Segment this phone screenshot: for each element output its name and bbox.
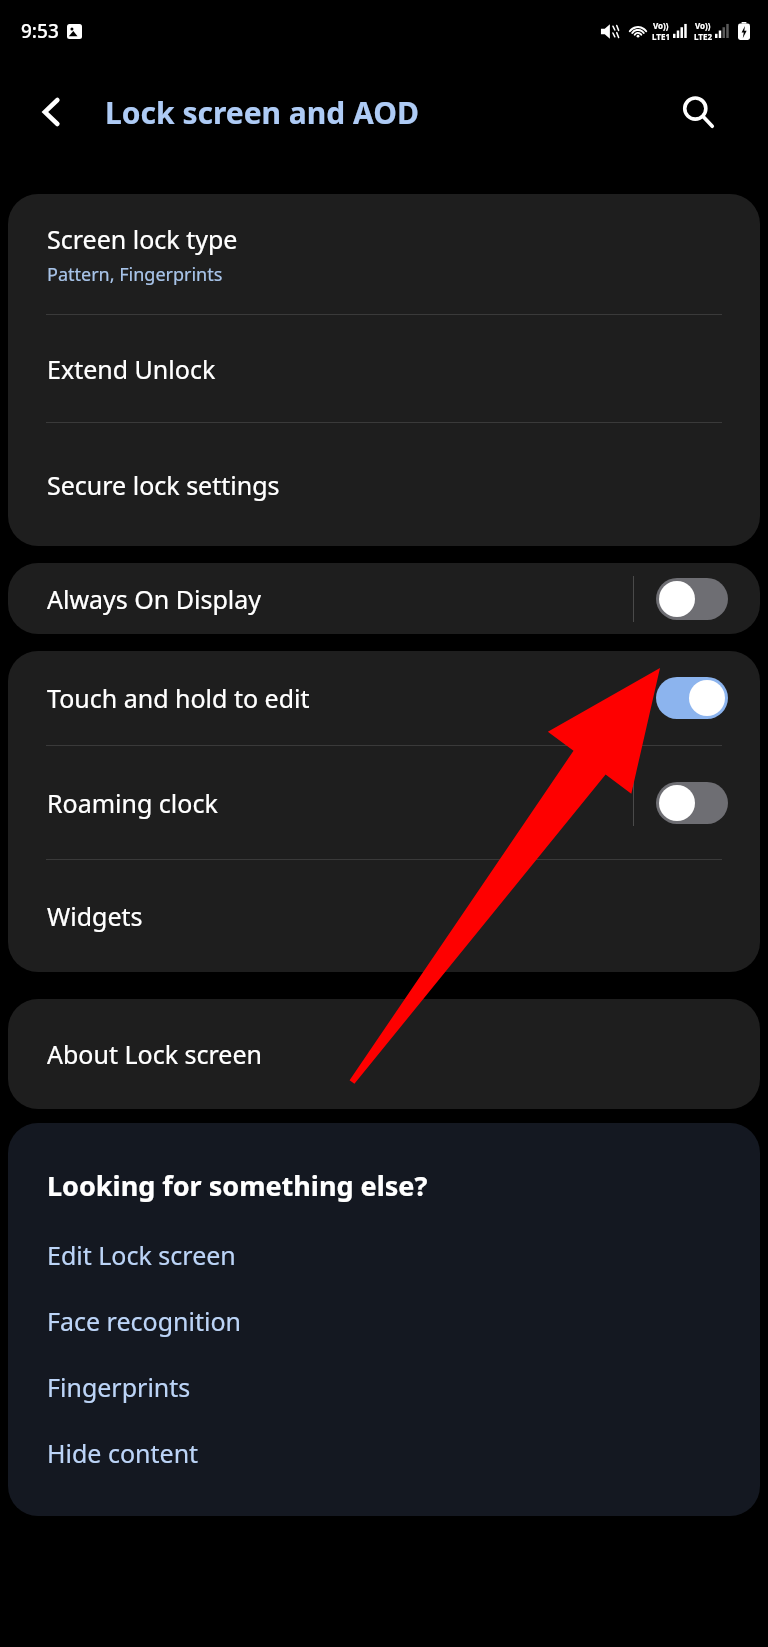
staticText: Screen lock type bbox=[47, 222, 238, 256]
staticText: Vo)) bbox=[695, 20, 711, 31]
staticText: Face recognition bbox=[47, 1304, 241, 1338]
staticText: About Lock screen bbox=[47, 1037, 262, 1071]
button[interactable]: Secure lock settings bbox=[8, 423, 760, 546]
staticText: Always On Display bbox=[47, 582, 633, 616]
button[interactable]: Extend Unlock bbox=[8, 315, 760, 422]
button[interactable]: Fingerprints bbox=[8, 1354, 760, 1420]
button[interactable]: Always On Display bbox=[8, 563, 760, 634]
button[interactable]: Widgets bbox=[8, 860, 760, 972]
staticText: Looking for something else? bbox=[47, 1167, 428, 1204]
button[interactable]: Hide content bbox=[8, 1420, 760, 1486]
staticText: Pattern, Fingerprints bbox=[47, 262, 223, 287]
staticText: Hide content bbox=[47, 1436, 199, 1470]
staticText: Touch and hold to edit bbox=[47, 681, 656, 715]
staticText: Roaming clock bbox=[47, 786, 633, 820]
button[interactable]: Search bbox=[670, 84, 726, 140]
staticText: Fingerprints bbox=[47, 1370, 191, 1404]
button[interactable]: Touch and hold to edit bbox=[8, 651, 760, 745]
staticText: Extend Unlock bbox=[47, 352, 216, 386]
button[interactable]: Back bbox=[24, 84, 80, 140]
button[interactable]: Roaming clock bbox=[8, 746, 760, 859]
staticText: Widgets bbox=[47, 899, 143, 933]
staticText: Lock screen and AOD bbox=[105, 92, 419, 133]
staticText: 9:53 bbox=[21, 18, 59, 44]
button[interactable]: Edit Lock screen bbox=[8, 1222, 760, 1288]
staticText: Vo)) bbox=[653, 20, 669, 31]
button[interactable]: Face recognition bbox=[8, 1288, 760, 1354]
staticText: Secure lock settings bbox=[47, 468, 280, 502]
staticText: LTE1 bbox=[652, 31, 670, 42]
button[interactable]: About Lock screen bbox=[8, 999, 760, 1109]
staticText: Edit Lock screen bbox=[47, 1238, 236, 1272]
staticText: LTE2 bbox=[694, 31, 712, 42]
button[interactable]: Screen lock type bbox=[8, 194, 760, 314]
